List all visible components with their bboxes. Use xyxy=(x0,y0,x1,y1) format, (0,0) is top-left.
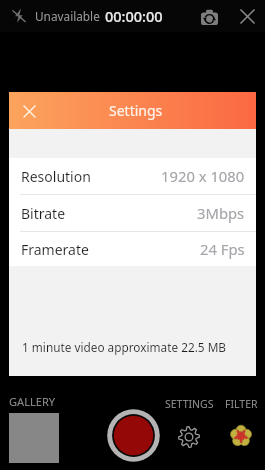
staticText: 00:00:00 xyxy=(105,6,163,26)
staticText: Framerate xyxy=(21,240,89,259)
staticText: FILTER xyxy=(225,397,258,411)
staticText: Settings xyxy=(109,101,163,120)
button[interactable]: SETTINGS xyxy=(163,397,215,453)
button[interactable]: Resolution xyxy=(9,158,256,194)
button[interactable]: Switch camera xyxy=(196,3,222,29)
staticText: SETTINGS xyxy=(165,397,214,411)
staticText: Resolution xyxy=(21,167,91,186)
button[interactable]: GALLERY xyxy=(9,394,59,463)
button[interactable]: Flash off xyxy=(6,3,32,29)
button[interactable]: Close settings xyxy=(14,96,44,126)
staticText: 3Mbps xyxy=(197,203,245,223)
staticText: GALLERY xyxy=(9,394,56,409)
staticText: 1 minute video approximate 22.5 MB xyxy=(22,339,227,355)
button[interactable]: Record xyxy=(107,409,160,462)
staticText: Bitrate xyxy=(21,204,66,223)
button[interactable]: Close xyxy=(234,3,260,29)
button[interactable]: Bitrate xyxy=(9,195,256,231)
button[interactable]: FILTER xyxy=(222,397,260,453)
staticText: 1920 x 1080 xyxy=(161,166,245,186)
staticText: 24 Fps xyxy=(200,239,245,259)
button[interactable]: Framerate xyxy=(9,232,256,266)
staticText: Unavailable xyxy=(35,8,100,24)
